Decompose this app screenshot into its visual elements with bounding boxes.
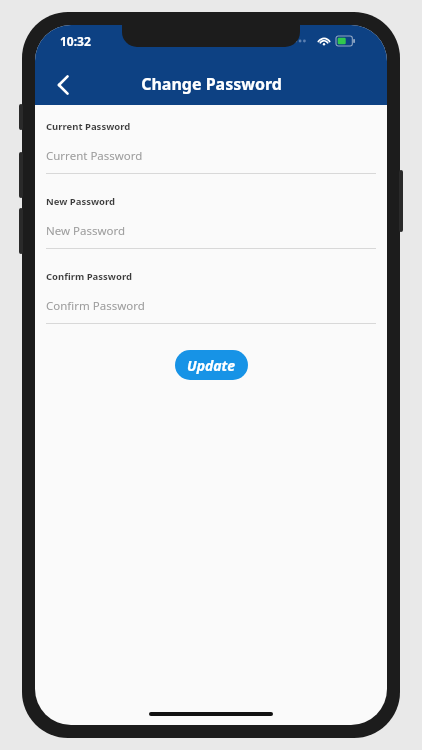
button[interactable]: Back [43, 65, 83, 105]
staticText: New Password [46, 195, 116, 208]
staticText: 10:32 [60, 33, 91, 49]
staticText: Current Password [46, 120, 131, 133]
button[interactable]: Current Password [46, 146, 376, 166]
staticText: Confirm Password [46, 270, 132, 283]
staticText: Update [187, 356, 236, 375]
button[interactable]: Update [175, 350, 248, 380]
staticText: Change Password [141, 73, 282, 95]
staticText: Confirm Password [46, 298, 145, 314]
button[interactable]: New Password [46, 221, 376, 241]
button[interactable]: Confirm Password [46, 296, 376, 316]
staticText: New Password [46, 223, 126, 239]
staticText: Current Password [46, 148, 143, 164]
